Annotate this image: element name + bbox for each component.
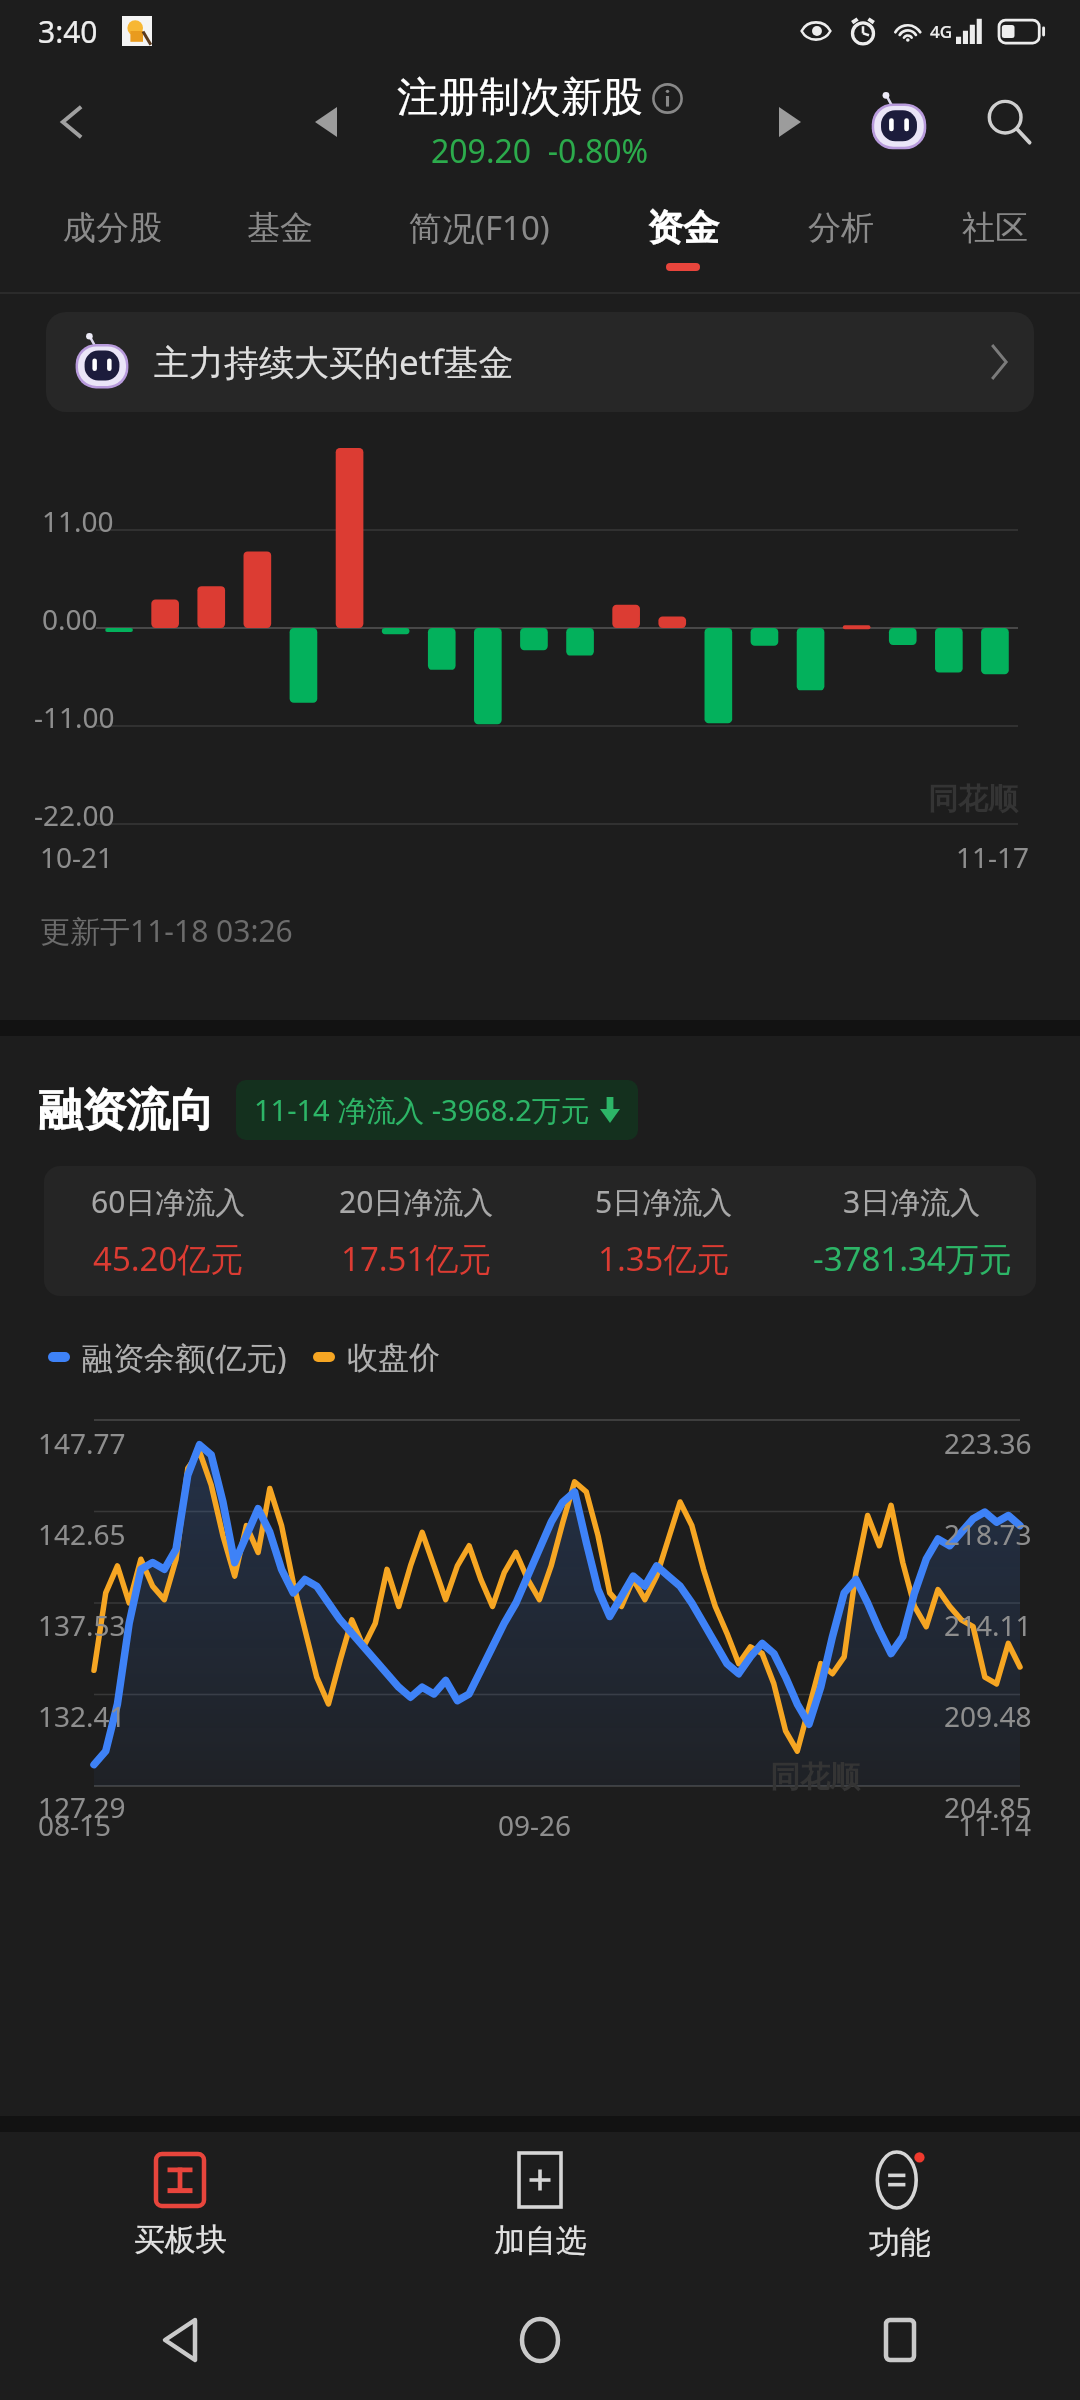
button[interactable]: 3日净流入 xyxy=(788,1181,1036,1281)
staticText: 11-14 xyxy=(958,1806,1032,1844)
staticText: 223.36 xyxy=(944,1424,1032,1462)
button[interactable]: 基金 xyxy=(203,182,357,294)
staticText: 主力持续大买的etf基金 xyxy=(154,338,514,386)
button[interactable]: 功能 xyxy=(720,2132,1080,2280)
staticText: 更新于11-18 03:26 xyxy=(40,910,293,951)
staticText: 5日净流入 xyxy=(595,1181,733,1222)
staticText: 218.73 xyxy=(944,1515,1032,1553)
staticText: 3:40 xyxy=(38,11,98,52)
staticText: 分析 xyxy=(808,207,874,249)
button[interactable]: 资金 xyxy=(601,182,764,294)
staticText: 收盘价 xyxy=(347,1338,440,1377)
staticText: 11-17 xyxy=(956,838,1030,876)
staticText: 功能 xyxy=(869,2223,931,2262)
button[interactable]: Search xyxy=(970,83,1048,161)
staticText: 3日净流入 xyxy=(843,1181,981,1222)
button[interactable]: 5日净流入 xyxy=(540,1181,788,1281)
button[interactable]: Back xyxy=(145,2300,215,2380)
staticText: 注册制次新股 xyxy=(397,72,643,124)
staticText: -3781.34万元 xyxy=(813,1236,1012,1281)
button[interactable]: 60日净流入 xyxy=(44,1181,292,1281)
staticText: 同花顺 xyxy=(770,1758,860,1796)
staticText: 204.85 xyxy=(944,1788,1032,1826)
staticText: 融资流向 xyxy=(38,1083,214,1138)
button[interactable]: Previous xyxy=(298,94,354,150)
staticText: 137.53 xyxy=(38,1606,126,1644)
staticText: 09-26 xyxy=(498,1806,572,1844)
button[interactable]: 简况(F10) xyxy=(357,182,601,294)
staticText: 127.29 xyxy=(38,1788,126,1826)
staticText: 214.11 xyxy=(944,1606,1032,1644)
staticText: 08-15 xyxy=(38,1806,112,1844)
staticText: 11.00 xyxy=(42,502,114,540)
button[interactable]: Recents xyxy=(866,2300,934,2380)
button[interactable]: Next xyxy=(762,94,818,150)
staticText: -22.00 xyxy=(34,796,115,834)
staticText: 社区 xyxy=(962,207,1028,249)
button[interactable]: 加自选 xyxy=(360,2132,720,2280)
staticText: 10-21 xyxy=(40,838,114,876)
button[interactable]: Back xyxy=(36,85,110,159)
staticText: 同花顺 xyxy=(928,780,1018,818)
button[interactable]: AI assistant xyxy=(860,83,938,161)
staticText: 买板块 xyxy=(134,2220,227,2259)
staticText: 11-14 净流入 -3968.2万元 xyxy=(254,1090,590,1130)
button[interactable]: 买板块 xyxy=(0,2132,360,2280)
button[interactable]: 20日净流入 xyxy=(292,1181,540,1281)
staticText: 0.00 xyxy=(42,600,98,638)
staticText: 资金 xyxy=(647,205,719,250)
staticText: 17.51亿元 xyxy=(341,1236,492,1281)
button[interactable]: 成分股 xyxy=(22,182,203,294)
staticText: 209.48 xyxy=(944,1697,1032,1735)
staticText: 20日净流入 xyxy=(339,1181,494,1222)
staticText: 45.20亿元 xyxy=(93,1236,244,1281)
staticText: 1.35亿元 xyxy=(598,1236,730,1281)
staticText: 132.41 xyxy=(38,1697,126,1735)
button[interactable]: 社区 xyxy=(918,182,1072,294)
staticText: 147.77 xyxy=(38,1424,126,1462)
staticText: 加自选 xyxy=(494,2221,587,2260)
staticText: 成分股 xyxy=(63,207,162,249)
staticText: 60日净流入 xyxy=(91,1181,246,1222)
staticText: 4G xyxy=(930,20,953,43)
button[interactable]: 分析 xyxy=(764,182,918,294)
button[interactable]: Home xyxy=(502,2299,578,2381)
staticText: -11.00 xyxy=(34,698,115,736)
staticText: 142.65 xyxy=(38,1515,126,1553)
button[interactable]: 注册制次新股 xyxy=(397,72,683,173)
staticText: 融资余额(亿元) xyxy=(82,1336,287,1378)
button[interactable]: 主力持续大买的etf基金 xyxy=(46,312,1034,412)
staticText: 基金 xyxy=(247,207,313,249)
staticText: 209.20 -0.80% xyxy=(431,129,649,173)
staticText: 简况(F10) xyxy=(409,205,550,250)
